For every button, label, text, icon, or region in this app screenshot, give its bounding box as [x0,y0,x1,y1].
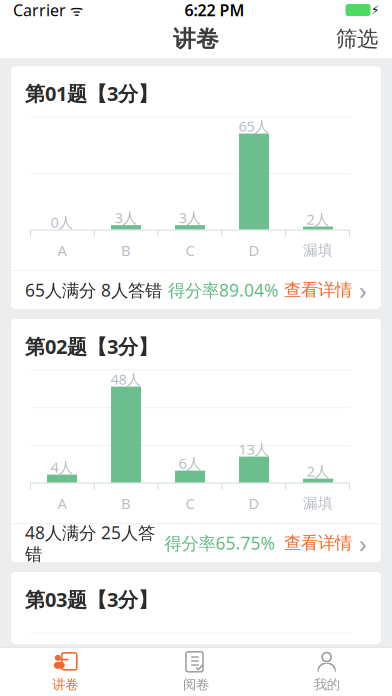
staticText: 2人 [306,461,329,481]
staticText: 4人 [50,457,73,477]
button[interactable]: 筛选 [322,20,392,58]
staticText: 第02题【3分】 [25,333,158,360]
staticText: B [121,494,131,513]
staticText: 65人满分 8人答错 [25,278,162,301]
staticText: B [121,241,131,260]
staticText: 6人 [178,453,201,473]
staticText: 13人 [238,439,269,459]
staticText: C [185,494,194,513]
staticText: 漏填 [303,241,333,259]
staticText: 筛选 [336,26,378,52]
staticText: 查看详情 [284,279,352,301]
staticText: 3人 [178,208,201,227]
staticText: A [57,241,66,260]
button[interactable]: 讲卷 [0,648,131,696]
staticText: C [185,241,194,260]
staticText: 讲卷 [52,676,78,693]
staticText: 65人 [238,116,269,136]
staticText: A [57,494,66,513]
staticText: 得分率65.75% [164,532,274,555]
staticText: 第03题【3分】 [25,586,158,613]
staticText: D [248,494,259,513]
staticText: 3人 [114,208,137,227]
staticText: 0人 [50,212,73,232]
staticText: 得分率89.04% [168,278,278,301]
staticText: Carrier [13,0,66,21]
staticText: D [248,241,259,260]
staticText: 查看详情 [284,532,352,554]
staticText: 阅卷 [183,676,209,693]
button[interactable]: 阅卷 [131,648,261,696]
staticText: 讲卷 [173,25,219,53]
staticText: › [359,526,367,560]
staticText: 48人满分 25人答错 [25,521,155,565]
staticText: ᯤ [66,0,83,20]
staticText: 2人 [306,209,329,229]
staticText: 6:22 PM [184,0,244,21]
staticText: 48人 [110,369,141,389]
staticText: 漏填 [303,494,333,512]
staticText: 第01题【3分】 [25,80,158,107]
button[interactable]: 查看详情 [284,273,367,307]
staticText: 我的 [314,676,340,693]
staticText: › [359,273,367,307]
button[interactable]: 查看详情 [284,526,367,560]
button[interactable]: 我的 [261,648,392,696]
staticText: ⚡︎ [371,3,379,17]
